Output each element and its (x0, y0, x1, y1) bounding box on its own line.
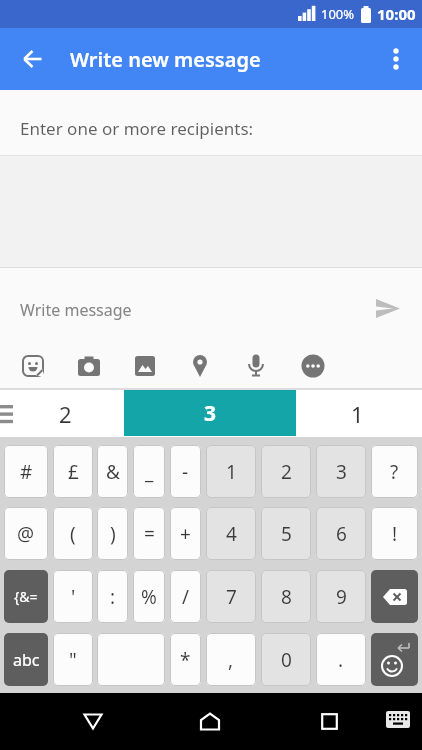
staticText: Write message (20, 299, 132, 321)
button[interactable]: 2 (20, 390, 110, 437)
button[interactable]: & (97, 445, 128, 498)
staticText: Write new message (70, 46, 261, 73)
button[interactable]: 1 (312, 390, 402, 437)
button[interactable]: 1 (206, 445, 256, 498)
staticText: ! (392, 521, 398, 547)
button[interactable]: 9 (316, 570, 366, 623)
button[interactable]: " (53, 633, 93, 686)
button[interactable] (128, 349, 162, 383)
button[interactable] (296, 349, 330, 383)
button[interactable] (371, 633, 418, 686)
staticText: # (20, 459, 33, 485)
staticText: 6 (336, 521, 347, 547)
button[interactable] (71, 699, 115, 743)
button[interactable] (16, 42, 50, 76)
button[interactable]: - (170, 445, 201, 498)
button[interactable]: £ (53, 445, 93, 498)
button[interactable]: ! (371, 507, 418, 560)
button[interactable]: * (170, 633, 201, 686)
button[interactable]: + (170, 507, 201, 560)
button[interactable]: _ (133, 445, 165, 498)
button[interactable] (183, 349, 217, 383)
staticText: + (180, 521, 191, 547)
staticText: 2 (59, 399, 72, 429)
button[interactable]: 0 (261, 633, 311, 686)
staticText: £ (68, 459, 79, 485)
button[interactable]: abc (4, 633, 48, 686)
button[interactable] (307, 699, 351, 743)
button[interactable]: 4 (206, 507, 256, 560)
button[interactable]: {&= (4, 570, 48, 623)
staticText: ? (390, 459, 399, 485)
staticText: abc (13, 649, 40, 671)
button[interactable]: 5 (261, 507, 311, 560)
staticText: ( (70, 521, 76, 547)
button[interactable]: 3 (316, 445, 366, 498)
staticText: 7 (226, 584, 237, 610)
button[interactable]: 7 (206, 570, 256, 623)
button[interactable] (72, 349, 106, 383)
staticText: & (106, 459, 120, 485)
staticText: 9 (336, 584, 347, 610)
button[interactable]: @ (4, 507, 48, 560)
button[interactable]: ? (371, 445, 418, 498)
staticText: {&= (14, 587, 38, 606)
button[interactable]: Enter one or more recipients: (0, 90, 422, 156)
button[interactable] (16, 349, 50, 383)
button[interactable] (188, 699, 232, 743)
button[interactable]: . (316, 633, 366, 686)
button[interactable] (371, 570, 418, 623)
staticText: 3 (336, 459, 347, 485)
staticText: = (144, 521, 155, 547)
staticText: 8 (281, 584, 292, 610)
staticText: % (141, 584, 157, 610)
staticText: - (182, 459, 189, 485)
button[interactable]: % (133, 570, 165, 623)
staticText: 1 (351, 399, 364, 429)
staticText: Enter one or more recipients: (20, 117, 254, 140)
staticText: " (69, 647, 77, 673)
button[interactable] (239, 349, 273, 383)
button[interactable]: 8 (261, 570, 311, 623)
button[interactable]: Write message (0, 268, 422, 352)
staticText: * (180, 647, 191, 673)
staticText: 3 (204, 399, 217, 428)
button[interactable]: # (4, 445, 48, 498)
button[interactable]: , (206, 633, 256, 686)
button[interactable]: / (170, 570, 201, 623)
button[interactable]: 2 (261, 445, 311, 498)
staticText: ' (71, 584, 76, 610)
button[interactable]: ) (97, 507, 128, 560)
staticText: , (228, 647, 234, 673)
staticText: / (182, 584, 190, 610)
staticText: 0 (281, 647, 292, 673)
staticText: 100% (321, 5, 355, 23)
button[interactable] (378, 699, 418, 739)
button[interactable]: ' (53, 570, 93, 623)
button[interactable] (372, 294, 404, 322)
staticText: : (110, 584, 116, 610)
staticText: ) (110, 521, 116, 547)
button[interactable]: : (97, 570, 128, 623)
staticText: . (338, 647, 344, 673)
button[interactable] (380, 43, 412, 75)
button[interactable]: 3 (124, 390, 296, 436)
button[interactable] (97, 633, 165, 686)
staticText: 1 (226, 459, 237, 485)
button[interactable]: ( (53, 507, 93, 560)
staticText: 10:00 (377, 4, 416, 24)
button[interactable]: 6 (316, 507, 366, 560)
staticText: 2 (281, 459, 292, 485)
staticText: 4 (226, 521, 237, 547)
staticText: 5 (281, 521, 292, 547)
button[interactable]: = (133, 507, 165, 560)
staticText: @ (17, 521, 35, 547)
staticText: _ (145, 459, 154, 485)
